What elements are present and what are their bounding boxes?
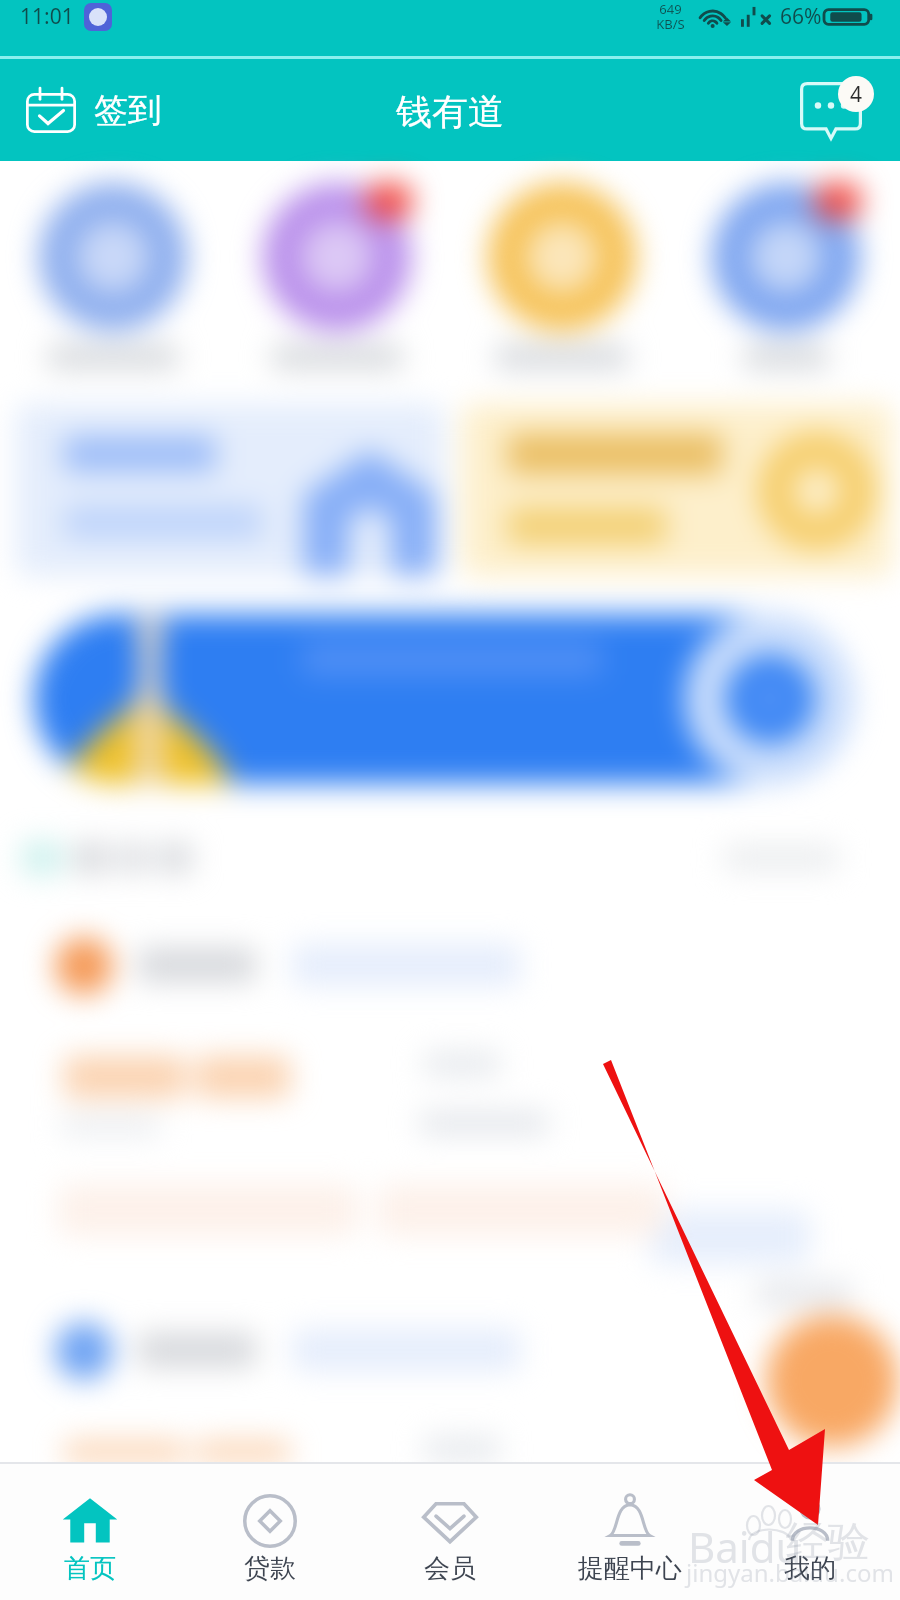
button[interactable] [700, 183, 872, 383]
staticText: 4 [850, 80, 863, 109]
button[interactable] [34, 614, 854, 784]
button[interactable]: 签到 [18, 74, 170, 147]
button[interactable]: 首页 [0, 1476, 180, 1600]
button[interactable]: 提醒中心 [540, 1476, 720, 1600]
staticText: 钱有道 [396, 89, 504, 134]
staticText: 经验 [786, 1516, 870, 1569]
staticText: 签到 [94, 89, 162, 132]
button[interactable]: 会员 [360, 1476, 540, 1600]
button[interactable]: Messages [796, 72, 878, 144]
staticText: 66% [780, 2, 822, 31]
button[interactable]: 我的 [720, 1476, 900, 1600]
staticText: Baidu [688, 1518, 802, 1575]
button[interactable]: 贷款 [180, 1476, 360, 1600]
staticText: 会员 [424, 1552, 476, 1585]
button[interactable] [27, 183, 199, 383]
staticText: 贷款 [244, 1552, 296, 1585]
staticText: 提醒中心 [578, 1552, 682, 1585]
button[interactable] [251, 183, 423, 383]
staticText: 我的 [784, 1552, 836, 1585]
button[interactable] [16, 404, 444, 576]
button[interactable] [476, 183, 648, 383]
button[interactable] [462, 404, 892, 576]
staticText: 649 KB/S [656, 0, 685, 33]
staticText: 首页 [64, 1552, 116, 1585]
staticText: 11:01 [20, 2, 74, 31]
staticText: jingyan.baidu.com [686, 1556, 894, 1589]
